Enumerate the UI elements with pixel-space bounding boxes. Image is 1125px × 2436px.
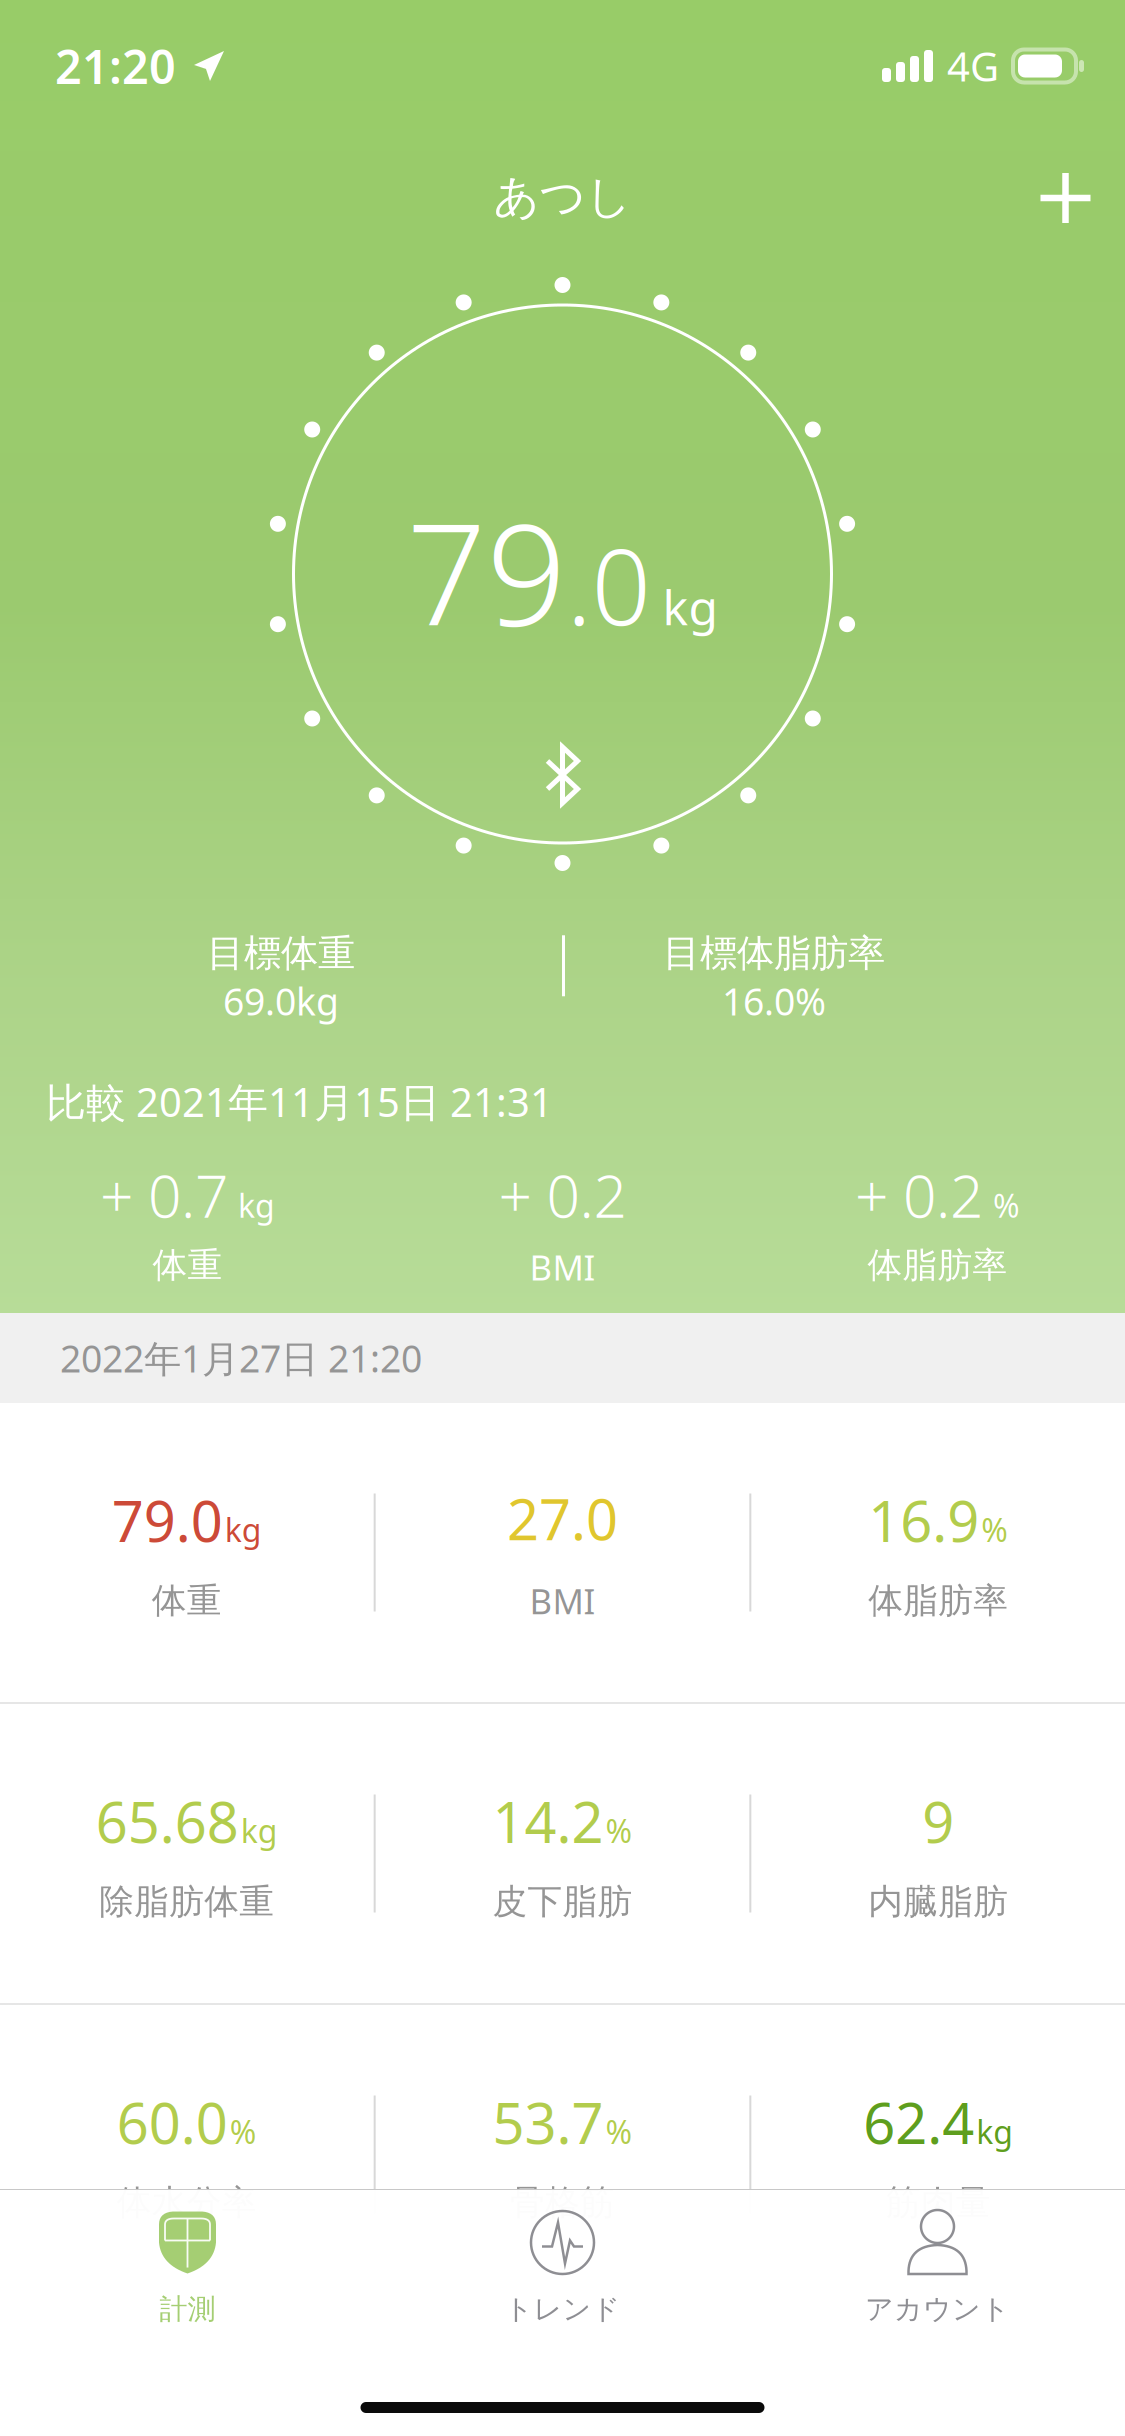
staticText: 14.2 xyxy=(492,1784,603,1858)
button[interactable]: アカウント xyxy=(750,2190,1125,2349)
staticText: 体重 xyxy=(152,1579,222,1622)
staticText: kg xyxy=(238,1184,275,1227)
staticText: % xyxy=(605,2110,632,2153)
staticText: 79 xyxy=(406,478,566,664)
staticText: kg xyxy=(241,1809,278,1852)
staticText: 体脂肪率 xyxy=(868,1579,1008,1622)
staticText: 62.4 xyxy=(863,2085,974,2159)
staticText: % xyxy=(993,1184,1020,1227)
staticText: 69.0kg xyxy=(223,976,339,1026)
staticText: 体脂肪率 xyxy=(867,1244,1007,1287)
staticText: 53.7 xyxy=(492,2085,603,2159)
staticText: 21:20 xyxy=(55,35,176,97)
staticText: BMI xyxy=(529,1244,595,1290)
staticText: 除脂肪体重 xyxy=(99,1880,274,1923)
staticText: 9 xyxy=(922,1784,954,1858)
staticText: 2022年1月27日 21:20 xyxy=(60,1333,422,1383)
staticText: 目標体重 xyxy=(207,930,355,976)
staticText: .0 xyxy=(566,516,650,654)
staticText: BMI xyxy=(529,1578,595,1624)
staticText: 計測 xyxy=(159,2292,215,2326)
staticText: + 0.2 xyxy=(498,1156,626,1234)
staticText: % xyxy=(230,2110,257,2153)
staticText: アカウント xyxy=(865,2292,1010,2326)
staticText: 79.0 xyxy=(112,1483,223,1557)
staticText: kg xyxy=(225,1508,262,1551)
staticText: 骨格筋 xyxy=(510,2181,615,2224)
staticText: 筋肉量 xyxy=(886,2181,991,2224)
staticText: + 0.2 xyxy=(855,1156,983,1234)
staticText: kg xyxy=(662,575,718,638)
staticText: 60.0 xyxy=(117,2085,228,2159)
staticText: + 0.7 xyxy=(100,1156,228,1234)
staticText: kg xyxy=(976,2110,1013,2153)
staticText: % xyxy=(605,1809,632,1852)
staticText: 内臓脂肪 xyxy=(868,1880,1008,1923)
staticText: 比較 2021年11月15日 21:31 xyxy=(46,1075,553,1128)
staticText: 65.68 xyxy=(96,1784,239,1858)
staticText: 27.0 xyxy=(507,1481,618,1556)
staticText: % xyxy=(981,1508,1008,1551)
staticText: 16.0% xyxy=(722,976,826,1026)
staticText: 皮下脂肪 xyxy=(492,1880,632,1923)
staticText: 体重 xyxy=(152,1244,222,1287)
staticText: あつし xyxy=(493,169,631,225)
button[interactable]: Add xyxy=(1009,142,1119,252)
staticText: 体水分率 xyxy=(117,2181,257,2224)
button[interactable]: 計測 xyxy=(0,2190,375,2349)
staticText: 4G xyxy=(947,39,999,92)
staticText: 目標体脂肪率 xyxy=(663,930,885,976)
staticText: 16.9 xyxy=(868,1483,979,1557)
button[interactable]: トレンド xyxy=(375,2190,750,2349)
staticText: トレンド xyxy=(504,2292,620,2326)
